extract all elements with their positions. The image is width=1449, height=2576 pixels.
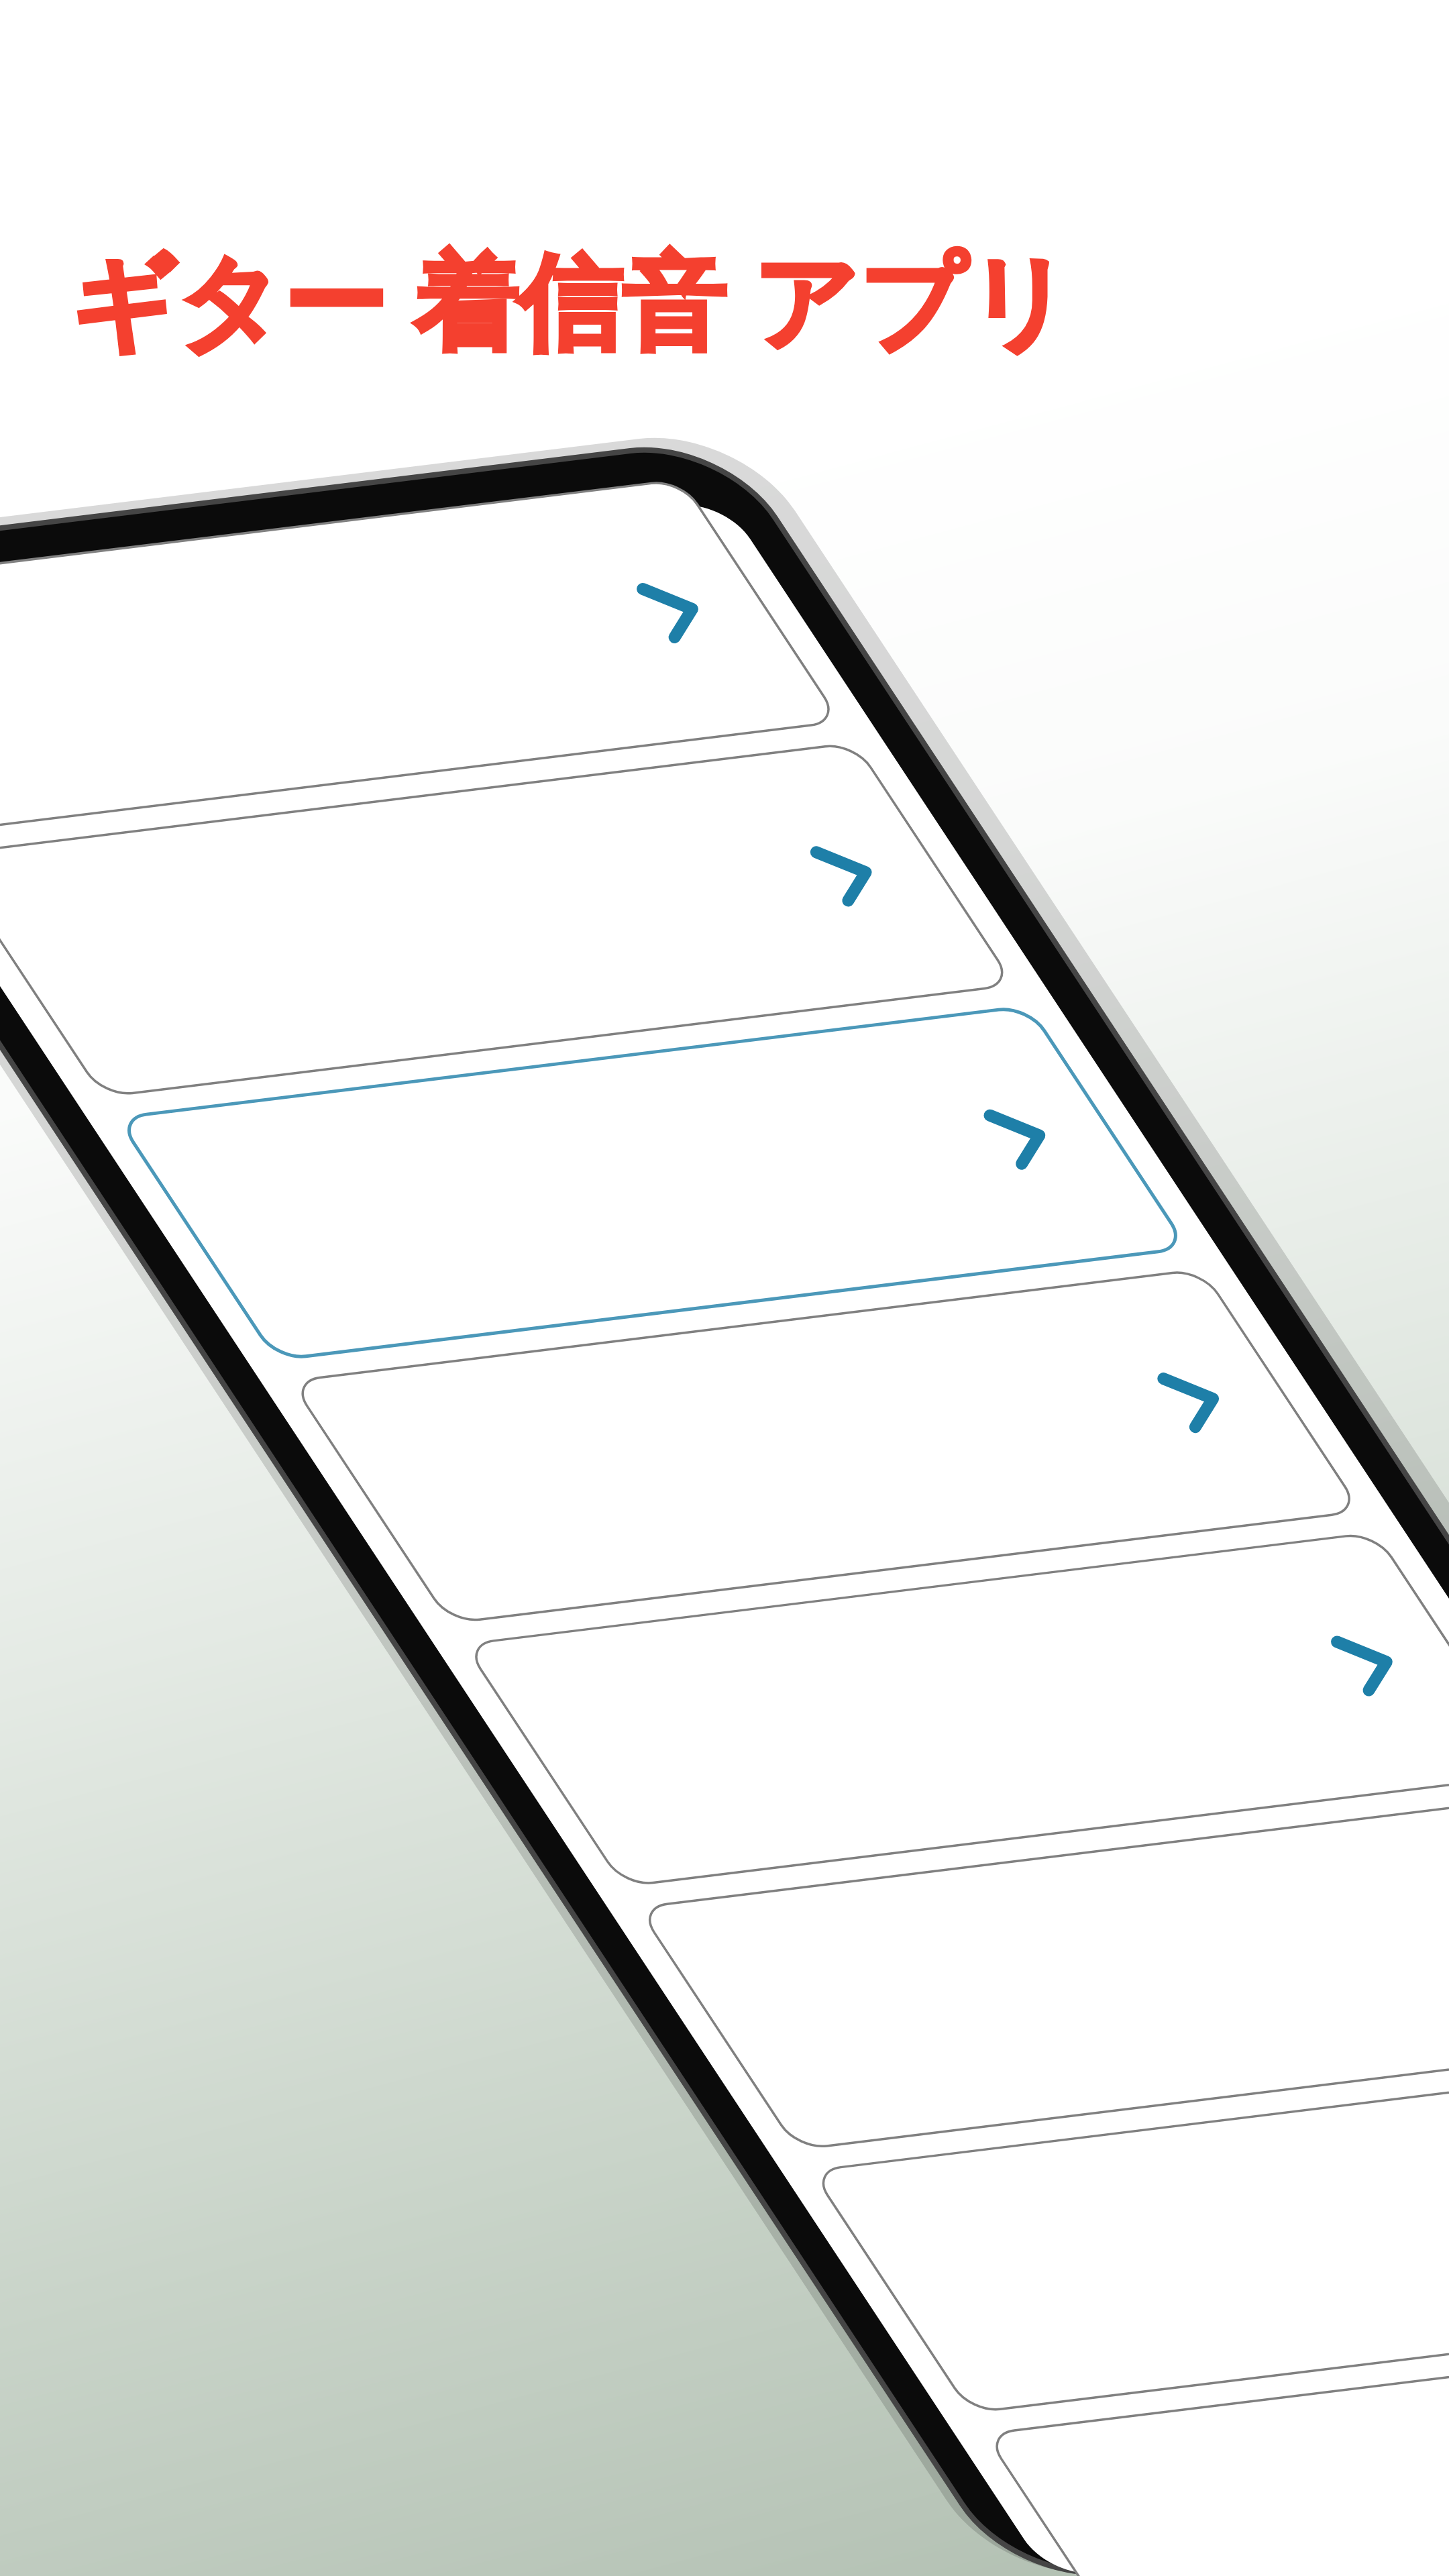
button[interactable]: ギター 着信音 アプリ <box>70 228 1072 370</box>
